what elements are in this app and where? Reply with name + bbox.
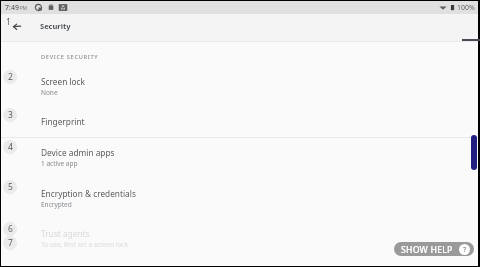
staticText: To use, first set a screen lock (41, 240, 128, 249)
staticText: 1 active app (41, 159, 78, 168)
staticText: 100% (457, 3, 475, 13)
staticText: Encryption & credentials (41, 188, 136, 199)
button[interactable]: Navigate up (5, 17, 27, 39)
staticText: Fingerprint (41, 116, 85, 127)
staticText: DEVICE SECURITY (41, 53, 99, 61)
staticText: Screen lock (41, 76, 86, 87)
button[interactable]: Trust agents (1, 222, 478, 253)
staticText: Encrypted (41, 200, 72, 209)
button[interactable]: Device admin apps (1, 141, 478, 173)
button[interactable]: Encryption & credentials (1, 182, 478, 213)
staticText: Trust agents (41, 228, 90, 239)
staticText: 4 (8, 141, 13, 153)
button[interactable]: Fingerprint (1, 110, 478, 137)
staticText: 3 (8, 109, 13, 121)
staticText: Device admin apps (41, 147, 115, 158)
staticText: ? (463, 245, 467, 255)
staticText: 6 (8, 223, 13, 235)
staticText: None (41, 88, 58, 97)
staticText: 2 (8, 71, 13, 83)
staticText: 7:49 (5, 3, 19, 13)
staticText: SHOW HELP (401, 244, 453, 256)
staticText: 5 (8, 181, 13, 193)
button[interactable]: Screen lock (1, 70, 478, 101)
staticText: 7 (8, 237, 13, 249)
staticText: Security (40, 21, 71, 31)
button[interactable]: SHOW HELP (394, 242, 474, 256)
staticText: 1 (6, 16, 11, 28)
staticText: PM (20, 5, 27, 11)
